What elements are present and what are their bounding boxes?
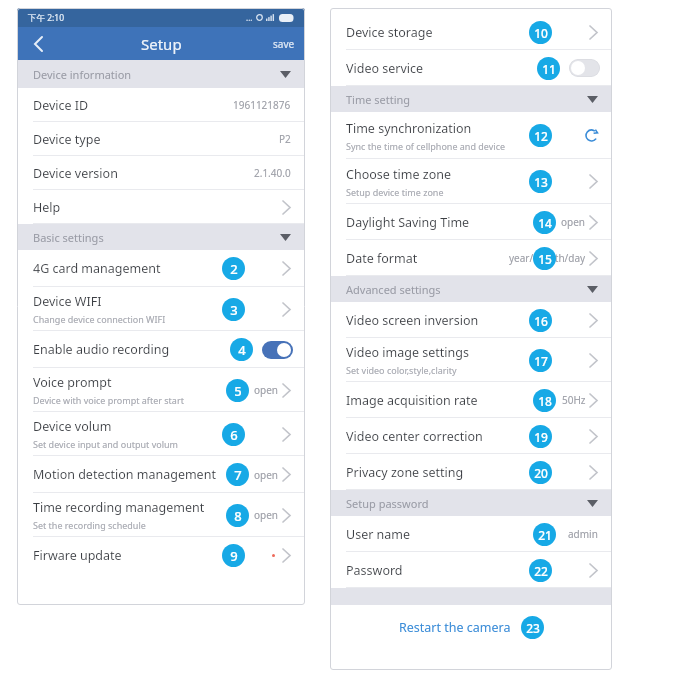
staticText: Basic settings [33,230,104,245]
button[interactable]: Voice prompt [17,368,305,412]
staticText: 14 [538,215,552,231]
button[interactable]: Choose time zone [330,159,612,204]
staticText: Video screen inversion [346,312,479,329]
staticText: 6 [230,426,238,444]
button[interactable]: Time recording management [17,493,305,537]
staticText: Device with voice prompt after start [33,394,184,406]
button[interactable]: Time synchronization [330,112,612,159]
staticText: Enable audio recording [33,341,170,358]
staticText: Time setting [346,92,411,107]
button[interactable]: Daylight Saving Time [330,204,612,240]
staticText: Device ID [33,97,89,114]
staticText: 17 [534,353,548,369]
staticText: Choose time zone [346,166,451,183]
staticText: Video service [346,60,424,77]
staticText: Motion detection management [33,466,216,483]
button[interactable]: Toggle off [569,59,600,77]
button[interactable]: Password [330,552,612,588]
staticText: Set device input and output volum [33,438,178,450]
staticText: Set the recording schedule [33,519,146,531]
button[interactable]: Firware update [17,537,305,573]
staticText: 9 [230,547,238,565]
staticText: Device volum [33,418,112,435]
button[interactable]: Device WIFI [17,287,305,331]
staticText: User name [346,526,411,543]
staticText: 13 [534,174,548,190]
staticText: Change device connection WIFI [33,313,166,325]
staticText: Help [33,199,61,216]
button[interactable]: Privacy zone setting [330,454,612,490]
staticText: 7 [234,466,242,484]
button[interactable]: Device type [17,122,305,156]
staticText: Video image settings [346,344,469,361]
staticText: 10 [534,25,548,41]
staticText: 2.1.40.0 [254,166,291,180]
staticText: P2 [279,132,291,146]
button[interactable]: Help [17,190,305,224]
button[interactable]: Image acquisition rate [330,382,612,418]
staticText: Setup [141,34,182,54]
staticText: admin [568,527,598,541]
button[interactable]: Back [27,33,49,55]
button[interactable]: Device volum [17,412,305,456]
staticText: 19 [534,429,548,445]
button[interactable]: Video center correction [330,418,612,454]
button[interactable]: Device ID [17,88,305,122]
staticText: 18 [538,393,552,409]
staticText: 5 [234,382,242,400]
staticText: 1961121876 [233,98,291,112]
button[interactable]: Enable audio recording [17,331,305,368]
staticText: open [561,215,586,229]
button[interactable]: Setup password [330,490,612,516]
staticText: Device storage [346,24,433,41]
staticText: Restart the camera [399,619,511,636]
button[interactable]: Device information [17,60,305,88]
button[interactable]: Video service [330,50,612,86]
staticText: Set video color,style,clarity [346,364,457,376]
staticText: 2 [230,260,238,278]
staticText: Video center correction [346,428,483,445]
button[interactable]: Sync time [585,129,598,142]
staticText: save [273,37,295,51]
staticText: 50Hz [562,393,586,407]
button[interactable]: save [273,37,295,51]
staticText: Device version [33,165,118,182]
button[interactable]: Toggle on [262,341,293,359]
staticText: 20 [534,465,548,481]
button[interactable]: Basic settings [17,224,305,250]
button[interactable]: 4G card management [17,250,305,287]
staticText: 21 [538,527,552,543]
staticText: Password [346,562,403,579]
staticText: open [254,508,279,522]
staticText: year/month/day [509,251,586,265]
button[interactable]: Device version [17,156,305,190]
staticText: 12 [534,128,548,144]
button[interactable]: Video image settings [330,338,612,382]
staticText: 22 [534,563,548,579]
button[interactable]: Date format [330,240,612,276]
staticText: 8 [234,507,242,525]
button[interactable]: User name [330,516,612,552]
staticText: Image acquisition rate [346,392,478,409]
staticText: open [254,468,279,482]
staticText: 23 [526,620,540,636]
staticText: 4G card management [33,260,161,277]
button[interactable]: Motion detection management [17,456,305,493]
staticText: open [254,383,279,397]
staticText: Sync the time of cellphone and device [346,140,506,152]
staticText: Time recording management [33,499,205,516]
staticText: 3 [230,301,238,319]
staticText: Device information [33,67,132,82]
staticText: Voice prompt [33,374,112,391]
button[interactable]: Device storage [330,14,612,50]
staticText: Time synchronization [346,120,472,137]
staticText: 16 [534,313,548,329]
staticText: Daylight Saving Time [346,214,470,231]
button[interactable]: Advanced settings [330,276,612,302]
staticText: 下午 2:10 [28,12,65,24]
staticText: Advanced settings [346,282,441,297]
button[interactable]: Video screen inversion [330,302,612,338]
button[interactable]: Time setting [330,86,612,112]
staticText: 4 [238,341,246,359]
button[interactable]: Restart the camera [330,605,612,649]
